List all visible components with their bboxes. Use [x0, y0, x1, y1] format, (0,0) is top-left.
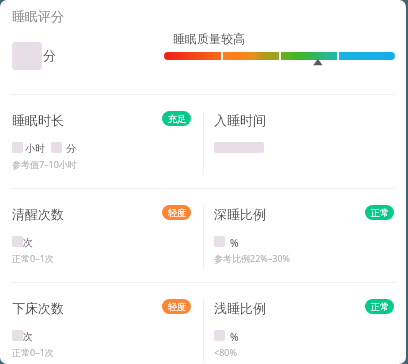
- other: Current score marker: [312, 56, 324, 68]
- staticText: 正常0–1次: [12, 346, 54, 358]
- staticText: 参考值7–10小时: [12, 158, 77, 170]
- staticText: <80%: [214, 346, 237, 358]
- button[interactable]: 正常: [365, 299, 394, 314]
- staticText: 小时: [25, 142, 45, 155]
- staticText: 下床次数: [12, 300, 64, 316]
- staticText: 睡眠质量较高: [173, 31, 245, 46]
- staticText: 深睡比例: [214, 206, 266, 222]
- staticText: 轻度: [168, 207, 186, 218]
- staticText: 浅睡比例: [214, 300, 266, 316]
- staticText: 分: [43, 47, 56, 63]
- staticText: 睡眠时长: [12, 112, 64, 128]
- staticText: 正常: [371, 207, 389, 218]
- staticText: 充足: [168, 113, 186, 124]
- staticText: 正常0–1次: [12, 252, 54, 264]
- button[interactable]: 充足: [162, 111, 191, 126]
- staticText: 轻度: [168, 301, 186, 312]
- staticText: 分: [66, 142, 76, 155]
- staticText: %: [230, 330, 239, 344]
- staticText: 清醒次数: [12, 206, 64, 222]
- other: Sleep quality scale: [164, 52, 395, 60]
- staticText: %: [230, 236, 239, 250]
- staticText: 次: [23, 330, 33, 343]
- staticText: 次: [23, 236, 33, 249]
- staticText: 睡眠评分: [12, 8, 64, 24]
- button[interactable]: 轻度: [162, 299, 191, 314]
- staticText: 正常: [371, 301, 389, 312]
- button[interactable]: 正常: [365, 205, 394, 220]
- staticText: 参考比例22%–30%: [214, 252, 291, 264]
- button[interactable]: 轻度: [162, 205, 191, 220]
- staticText: 入睡时间: [214, 112, 266, 128]
